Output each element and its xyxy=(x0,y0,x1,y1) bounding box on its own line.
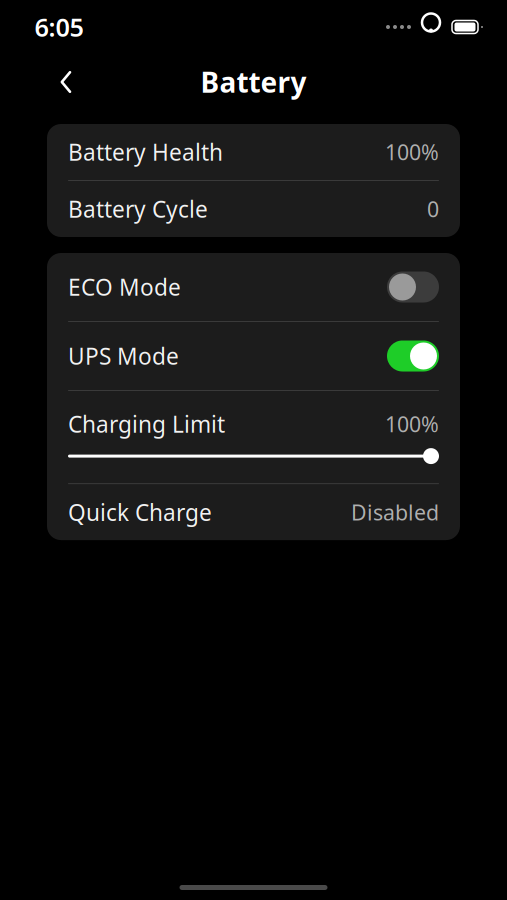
staticText: Battery Health xyxy=(68,137,223,167)
button[interactable]: Battery Cycle xyxy=(47,181,460,237)
staticText: 100% xyxy=(385,410,439,438)
staticText: 100% xyxy=(385,138,439,166)
staticText: Battery xyxy=(200,63,306,101)
staticText: UPS Mode xyxy=(68,341,179,371)
button[interactable]: Quick Charge xyxy=(47,484,460,540)
button[interactable]: UPS Mode xyxy=(47,322,460,390)
staticText: Battery Cycle xyxy=(68,194,208,224)
button[interactable]: Charging Limit slider xyxy=(47,439,460,473)
button[interactable]: Battery Health xyxy=(47,124,460,180)
staticText: Disabled xyxy=(351,498,439,526)
staticText: 6:05 xyxy=(34,10,83,44)
button[interactable]: ECO Mode xyxy=(47,253,460,321)
button[interactable]: Back xyxy=(42,58,90,106)
staticText: ECO Mode xyxy=(68,272,181,302)
staticText: Charging Limit xyxy=(68,409,225,439)
staticText: Quick Charge xyxy=(68,497,212,527)
staticText: 0 xyxy=(427,195,439,223)
